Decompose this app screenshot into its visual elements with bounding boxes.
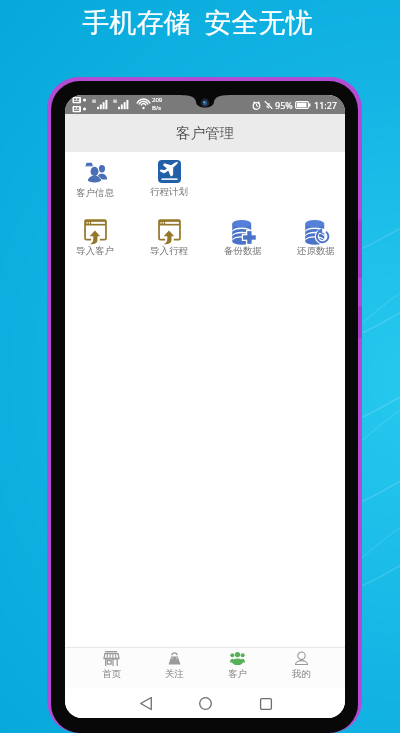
staticText: 95% <box>275 99 293 111</box>
button[interactable]: 导入行程 <box>138 219 200 257</box>
button[interactable]: 我的 <box>278 651 324 680</box>
staticText: 客户管理 <box>176 124 234 142</box>
button[interactable]: 客户 <box>214 651 260 680</box>
button[interactable]: 客户信息 <box>65 161 126 199</box>
staticText: 手机存储 安全无忧 <box>82 3 313 40</box>
staticText: 首页 <box>102 668 121 680</box>
staticText: 还原数据 <box>297 245 335 257</box>
staticText: 209 <box>152 96 163 104</box>
staticText: 11:27 <box>314 99 338 111</box>
staticText: 行程计划 <box>150 186 188 198</box>
staticText: 备份数据 <box>224 245 262 257</box>
button[interactable]: 行程计划 <box>138 160 200 198</box>
button[interactable]: Home <box>195 693 216 714</box>
button[interactable]: 导入客户 <box>65 219 126 257</box>
button[interactable]: Recents <box>255 693 276 714</box>
button[interactable]: 备份数据 <box>212 219 274 257</box>
staticText: 客户 <box>228 668 247 680</box>
button[interactable]: 首页 <box>88 651 134 680</box>
staticText: 导入行程 <box>150 245 188 257</box>
button[interactable]: 关注 <box>151 651 197 680</box>
staticText: 关注 <box>165 668 184 680</box>
button[interactable]: 还原数据 <box>285 219 345 257</box>
staticText: 客户信息 <box>76 187 114 199</box>
button[interactable]: Back <box>135 693 156 714</box>
staticText: 我的 <box>292 668 311 680</box>
staticText: 导入客户 <box>76 245 114 257</box>
staticText: B/s <box>152 104 162 112</box>
